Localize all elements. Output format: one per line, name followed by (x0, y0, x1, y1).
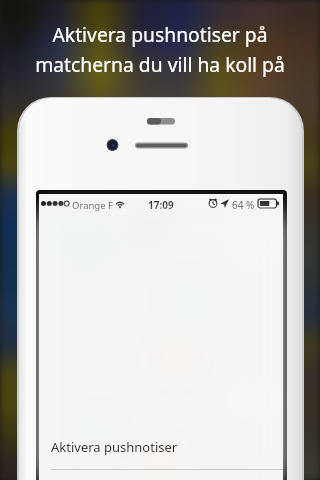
staticText: Orange F (72, 199, 113, 212)
staticText: 17:09 (148, 198, 174, 212)
button[interactable]: Aktivera pushnotiser (39, 427, 283, 469)
staticText: Aktivera pushnotiser på (52, 21, 268, 47)
staticText: 64 % (232, 198, 255, 212)
staticText: Aktivera pushnotiser (51, 438, 178, 456)
staticText: matcherna du vill ha koll på (35, 51, 285, 77)
